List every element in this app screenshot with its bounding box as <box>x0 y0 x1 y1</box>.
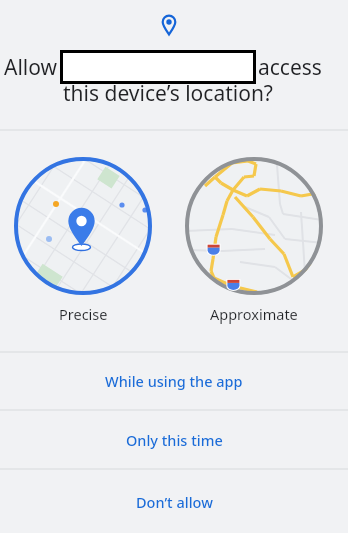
button[interactable]: Don’t allow <box>0 470 348 533</box>
staticText: access <box>258 53 322 82</box>
staticText: Allow <box>4 53 58 82</box>
staticText: this device’s location? <box>63 79 273 108</box>
staticText: Approximate <box>210 304 298 324</box>
staticText: Precise <box>59 304 108 324</box>
button[interactable]: While using the app <box>0 353 348 409</box>
button[interactable]: Only this time <box>0 411 348 468</box>
staticText: Only this time <box>126 430 223 450</box>
staticText: While using the app <box>105 371 243 391</box>
staticText: Don’t allow <box>136 492 213 512</box>
button[interactable] <box>14 157 152 295</box>
button[interactable] <box>185 157 323 295</box>
